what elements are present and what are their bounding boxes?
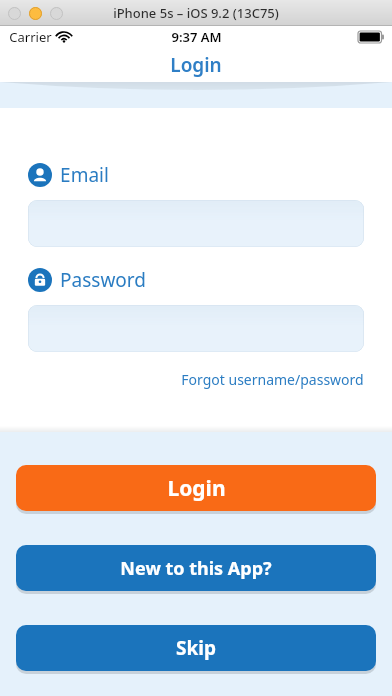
staticText: Email — [60, 162, 109, 188]
button[interactable] — [28, 200, 364, 247]
button[interactable]: Skip — [16, 625, 376, 671]
staticText: Forgot username/password — [181, 370, 364, 389]
staticText: Login — [167, 474, 226, 503]
button[interactable] — [28, 305, 364, 352]
staticText: 9:37 AM — [171, 28, 222, 46]
button[interactable]: New to this App? — [16, 545, 376, 591]
staticText: Carrier — [9, 28, 52, 46]
staticText: Skip — [176, 635, 216, 661]
button[interactable]: Login — [16, 465, 376, 511]
button[interactable]: Minimize — [29, 7, 42, 20]
button[interactable]: Close — [8, 7, 21, 20]
staticText: Password — [60, 267, 146, 293]
staticText: Login — [170, 52, 222, 78]
staticText: iPhone 5s – iOS 9.2 (13C75) — [113, 4, 279, 22]
button[interactable]: Zoom — [50, 7, 63, 20]
button[interactable]: Forgot username/password — [28, 370, 364, 389]
staticText: New to this App? — [120, 556, 272, 581]
